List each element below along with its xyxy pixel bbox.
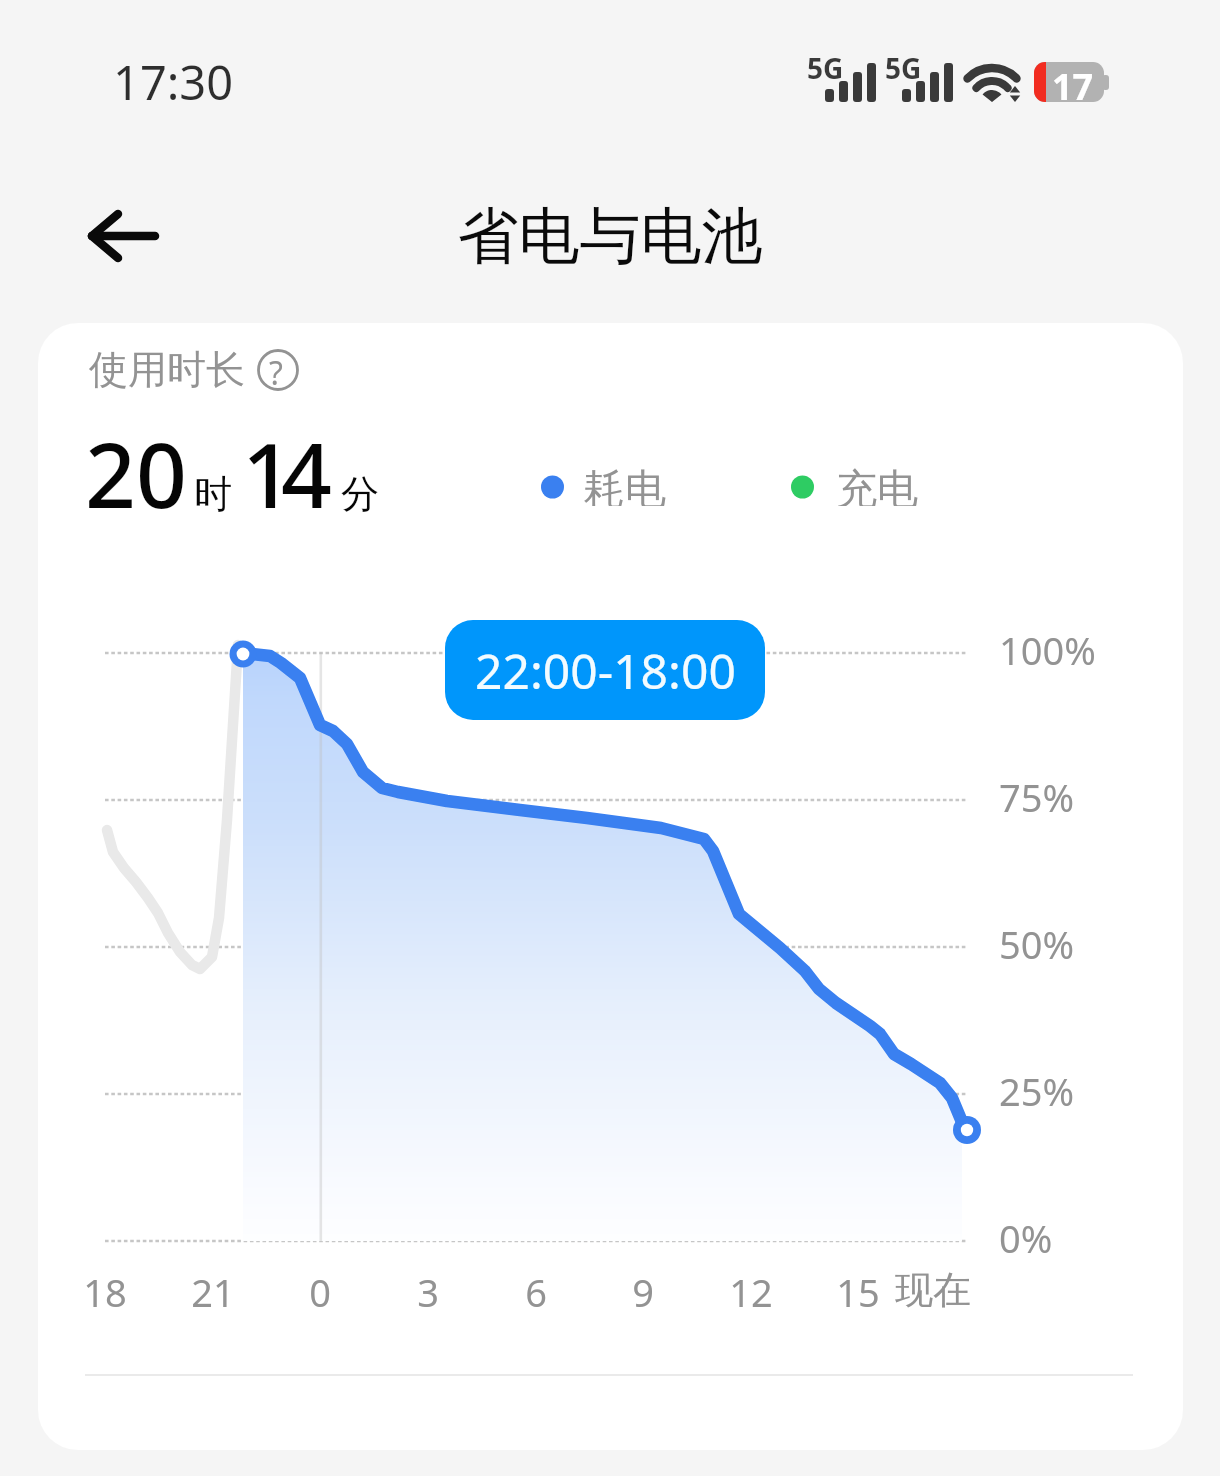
staticText: 充电 bbox=[836, 464, 918, 506]
staticText: 现在 bbox=[863, 1266, 1003, 1314]
staticText: 15 bbox=[788, 1266, 928, 1318]
staticText: 9 bbox=[573, 1266, 713, 1318]
button[interactable]: Back bbox=[58, 186, 168, 286]
staticText: 分 bbox=[341, 470, 379, 518]
staticText: 25% bbox=[999, 1065, 1075, 1117]
staticText: 12 bbox=[681, 1266, 821, 1318]
staticText: 17 bbox=[1052, 62, 1094, 111]
staticText: 0 bbox=[250, 1266, 390, 1318]
staticText: 耗电 bbox=[584, 464, 666, 506]
staticText: 3 bbox=[358, 1266, 498, 1318]
staticText: 时 bbox=[194, 470, 232, 518]
staticText: 0% bbox=[999, 1212, 1053, 1264]
staticText: 20 bbox=[85, 413, 187, 534]
staticText: 5G bbox=[807, 49, 844, 87]
button[interactable]: 22:00-18:00 bbox=[445, 620, 765, 720]
staticText: 6 bbox=[466, 1266, 606, 1318]
button[interactable]: Help bbox=[257, 349, 299, 391]
staticText: 75% bbox=[999, 771, 1075, 823]
staticText: 省电与电池 bbox=[0, 198, 1220, 275]
staticText: 100% bbox=[999, 624, 1096, 676]
staticText: 4 bbox=[281, 413, 332, 534]
staticText: 21 bbox=[143, 1266, 283, 1318]
button[interactable]: 耗电 bbox=[541, 468, 666, 510]
staticText: 18 bbox=[38, 1266, 175, 1318]
staticText: 1 bbox=[242, 413, 293, 534]
staticText: ? bbox=[269, 351, 283, 393]
staticText: 50% bbox=[999, 918, 1075, 970]
staticText: 17:30 bbox=[113, 50, 234, 114]
staticText: 5G bbox=[885, 49, 922, 87]
button[interactable]: 充电 bbox=[791, 468, 921, 510]
staticText: 使用时长 bbox=[89, 345, 245, 394]
staticText: 22:00-18:00 bbox=[475, 638, 736, 703]
